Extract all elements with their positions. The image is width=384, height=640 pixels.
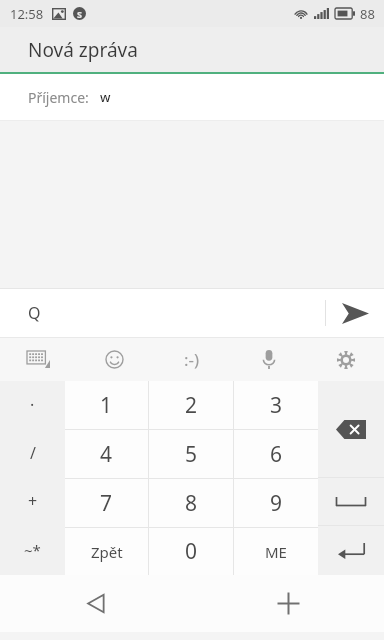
staticText: 12:58 [10, 5, 44, 23]
button[interactable]: ME [234, 528, 318, 575]
staticText: - [30, 538, 36, 560]
button[interactable]: Send [326, 289, 384, 337]
button[interactable]: Zpět [65, 528, 148, 575]
staticText: 7 [100, 489, 113, 518]
staticText: :-) [184, 348, 200, 371]
button[interactable]: 9 [234, 479, 318, 527]
button[interactable]: 8 [149, 479, 233, 527]
staticText: 88 [360, 5, 375, 23]
staticText: Příjemce: [28, 88, 89, 107]
button[interactable]: · [0, 381, 65, 429]
staticText: Zpět [91, 542, 123, 562]
button[interactable]: Q [0, 289, 325, 337]
button[interactable]: 6 [234, 430, 318, 478]
button[interactable]: Enter [318, 526, 384, 575]
button[interactable]: + [0, 477, 65, 525]
staticText: + [28, 490, 38, 512]
staticText: 4 [100, 440, 113, 469]
button[interactable]: Keyboard layout [0, 338, 76, 381]
button[interactable]: - [0, 525, 65, 573]
button[interactable]: 1 [65, 381, 148, 429]
staticText: w [100, 88, 111, 106]
button[interactable]: Space [318, 478, 384, 525]
staticText: S [77, 8, 82, 20]
button[interactable]: Add [192, 575, 384, 632]
button[interactable]: Back [0, 575, 192, 632]
button[interactable]: ~* [0, 525, 65, 575]
staticText: 1 [100, 391, 113, 420]
staticText: 5 [185, 440, 198, 469]
staticText: Q [28, 302, 41, 324]
button[interactable]: 5 [149, 430, 233, 478]
button[interactable]: 0 [149, 528, 233, 575]
button[interactable]: / [0, 429, 65, 477]
staticText: 9 [270, 489, 283, 518]
staticText: Nová zpráva [28, 37, 138, 63]
button[interactable]: 4 [65, 430, 148, 478]
button[interactable]: Emoji [76, 338, 153, 381]
staticText: 8 [185, 489, 198, 518]
button[interactable]: Příjemce: [0, 74, 384, 120]
button[interactable]: 2 [149, 381, 233, 429]
staticText: 0 [185, 537, 198, 566]
staticText: / [30, 442, 36, 464]
button[interactable]: Emoticons [153, 338, 230, 381]
button[interactable]: Nová zpráva [0, 27, 384, 72]
staticText: 2 [185, 391, 198, 420]
staticText: 6 [270, 440, 283, 469]
button[interactable]: 7 [65, 479, 148, 527]
staticText: · [30, 394, 35, 416]
staticText: 3 [270, 391, 283, 420]
button[interactable]: Backspace [318, 381, 384, 477]
button[interactable]: Settings [307, 338, 384, 381]
button[interactable]: Voice input [230, 338, 307, 381]
staticText: ME [265, 542, 287, 562]
staticText: ~* [24, 540, 41, 560]
button[interactable]: 3 [234, 381, 318, 429]
